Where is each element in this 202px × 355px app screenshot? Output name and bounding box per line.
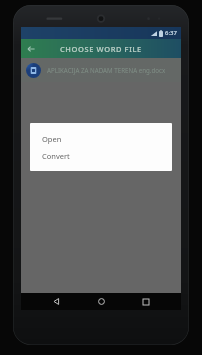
button[interactable]: Convert — [30, 147, 172, 164]
staticText: Convert — [42, 151, 70, 161]
button[interactable]: Home — [93, 293, 110, 310]
button[interactable]: Open — [30, 130, 172, 147]
button[interactable]: Back — [48, 293, 65, 310]
button[interactable]: APLIKACIJA ZA NADAM TERENA eng.docx — [21, 58, 181, 82]
staticText: Open — [42, 134, 62, 144]
staticText: APLIKACIJA ZA NADAM TERENA eng.docx — [47, 66, 166, 74]
button[interactable]: Recent apps — [137, 293, 154, 310]
button[interactable]: Navigate up — [21, 39, 40, 58]
staticText: 6:37 — [165, 29, 177, 37]
staticText: CHOOSE WORD FILE — [60, 44, 142, 54]
